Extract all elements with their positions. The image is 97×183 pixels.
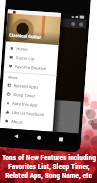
staticText: About [11, 119, 23, 125]
button[interactable]: About [0, 116, 53, 129]
button[interactable]: Guitar List [4, 52, 58, 65]
button[interactable]: Home [34, 132, 44, 143]
staticText: Rate this App [12, 101, 38, 108]
button[interactable]: Back [11, 131, 21, 142]
staticText: Favorites List, Sleep Timer, [8, 162, 90, 171]
button[interactable]: Rate this App [1, 98, 55, 111]
staticText: Tons of New Features including [2, 153, 96, 162]
staticText: Guitar List [15, 55, 36, 61]
button[interactable]: Sleep Timer [2, 89, 55, 102]
staticText: Related Aps, Song Name, etc [5, 171, 92, 180]
button[interactable]: Recents [56, 134, 66, 145]
button[interactable]: Favorite Bookish [4, 61, 57, 74]
staticText: Like Us Facebook [12, 110, 45, 117]
staticText: Related Apps [13, 83, 39, 90]
staticText: Home [16, 46, 28, 52]
staticText: Classical Guitar [9, 32, 42, 41]
button[interactable]: Related Apps [2, 80, 56, 93]
staticText: More [8, 75, 18, 80]
button[interactable]: Like Us Facebook [0, 107, 54, 120]
staticText: Sleep Timer [13, 92, 36, 98]
button[interactable]: Home [5, 43, 58, 56]
staticText: Favorite Bookish [15, 64, 47, 71]
